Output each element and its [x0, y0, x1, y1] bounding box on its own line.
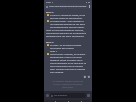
staticText: quelque chose à propos de la	[50, 58, 83, 61]
staticText: 9:48	[46, 1, 51, 4]
button[interactable]: More options	[88, 5, 91, 8]
staticText: Bloc 3 :	[46, 40, 55, 43]
button[interactable]: Recents	[79, 100, 83, 102]
button[interactable]: Back	[53, 100, 57, 102]
staticText: CLAIRE : Tu ne peux t'arrêter	[50, 43, 82, 46]
button[interactable]: Copy	[83, 75, 86, 78]
staticText: de vendre des choses embarrassantes,	[50, 46, 90, 49]
button[interactable]: Ask anything	[50, 93, 86, 98]
staticText: soit satisfait.	[50, 70, 64, 73]
staticText: pour trouver que tout le monde	[50, 67, 85, 70]
button[interactable]: Menu	[45, 5, 48, 8]
staticText: fais pas assez de lancements.	[50, 16, 83, 19]
staticText: agréable pour les deux personnes.	[46, 34, 85, 37]
button[interactable]: Home	[66, 100, 70, 102]
staticText: proprement. Mais tu as aussi	[50, 55, 82, 58]
staticText: LAUNCH : arrête de parler, tu ne	[50, 13, 86, 16]
staticText: Bloc 2 :	[46, 10, 55, 13]
staticText: Voici un cas très simple et concret,	[46, 28, 84, 31]
staticText: Ask anything	[54, 94, 67, 97]
staticText: ARCHIVAGE : Ensuite, je ne peux	[50, 52, 86, 55]
button[interactable]: Share	[87, 75, 90, 78]
staticText: communication et de dire que ce	[50, 61, 87, 64]
staticText: VALORISATION : ton contenu a	[50, 19, 84, 22]
staticText: mais ?	[50, 49, 57, 52]
button[interactable]: Send	[87, 94, 90, 97]
staticText: commercial discount au programme	[46, 31, 87, 34]
staticText: Mon blog Entrepreneuring Recette	[49, 5, 87, 8]
staticText: ne comprennent pas tes offres.	[50, 25, 85, 28]
staticText: sont particuliers qui te parfois	[50, 64, 83, 67]
staticText: un potentiel énorme et les gens	[50, 22, 86, 25]
staticText: Les réponses peuvent contenir des erreur…	[49, 80, 87, 89]
button[interactable]: Profile	[46, 94, 49, 97]
